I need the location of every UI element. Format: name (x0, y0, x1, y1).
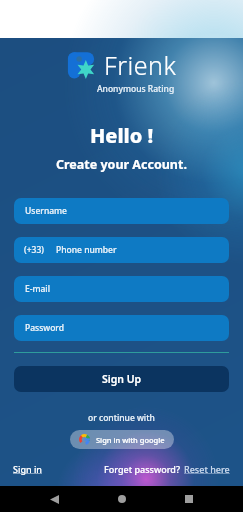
staticText: Username (25, 205, 67, 217)
button[interactable]: Reset here (184, 463, 230, 475)
staticText: Phone number (56, 244, 117, 256)
button[interactable]: Recent apps (176, 486, 202, 512)
button[interactable]: Back (41, 486, 67, 512)
staticText: Forget password? (104, 463, 180, 475)
staticText: Frienk (104, 48, 177, 82)
staticText: Anonymous Rating (97, 83, 175, 95)
button[interactable]: Sign Up (14, 366, 229, 392)
staticText: Password (25, 322, 65, 334)
staticText: Create your Account. (56, 156, 187, 173)
staticText: E-mail (25, 283, 50, 295)
staticText: Sign in with google (96, 435, 165, 445)
staticText: Hello ! (90, 122, 154, 149)
staticText: or continue with (88, 412, 155, 424)
button[interactable]: Password (14, 315, 229, 341)
staticText: Reset here (184, 463, 230, 475)
button[interactable]: Home (109, 486, 135, 512)
staticText: (+33) (24, 244, 44, 256)
button[interactable]: Username (14, 198, 229, 224)
button[interactable]: (+33) (14, 237, 229, 263)
staticText: Sign Up (102, 372, 142, 386)
button[interactable]: Sign in (13, 463, 43, 475)
button[interactable]: Sign in with google (70, 430, 174, 449)
staticText: Sign in (13, 463, 43, 475)
button[interactable]: E-mail (14, 276, 229, 302)
